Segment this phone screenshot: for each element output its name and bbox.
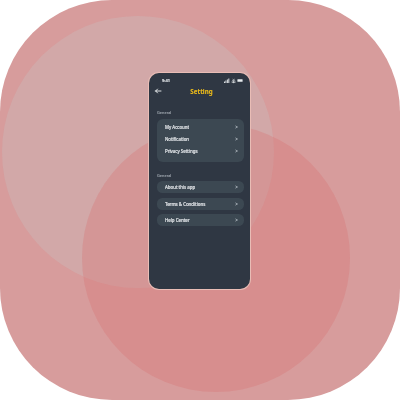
staticText: About this app: [165, 184, 196, 190]
staticText: My Account: [165, 124, 190, 130]
staticText: Privacy Settings: [165, 148, 198, 154]
button[interactable]: About this app: [157, 181, 244, 193]
staticText: Terms & Conditions: [165, 201, 206, 207]
staticText: Setting: [190, 87, 213, 95]
staticText: Help Center: [165, 217, 190, 223]
button[interactable]: Back: [152, 85, 164, 97]
button[interactable]: Notification: [157, 133, 244, 145]
staticText: 9:41: [162, 78, 170, 83]
button[interactable]: Help Center: [157, 214, 244, 226]
staticText: General: [157, 110, 172, 115]
button[interactable]: My Account: [157, 121, 244, 133]
staticText: Notification: [165, 136, 190, 142]
button[interactable]: Terms & Conditions: [157, 198, 244, 210]
button[interactable]: Privacy Settings: [157, 145, 244, 157]
staticText: General: [157, 173, 172, 178]
